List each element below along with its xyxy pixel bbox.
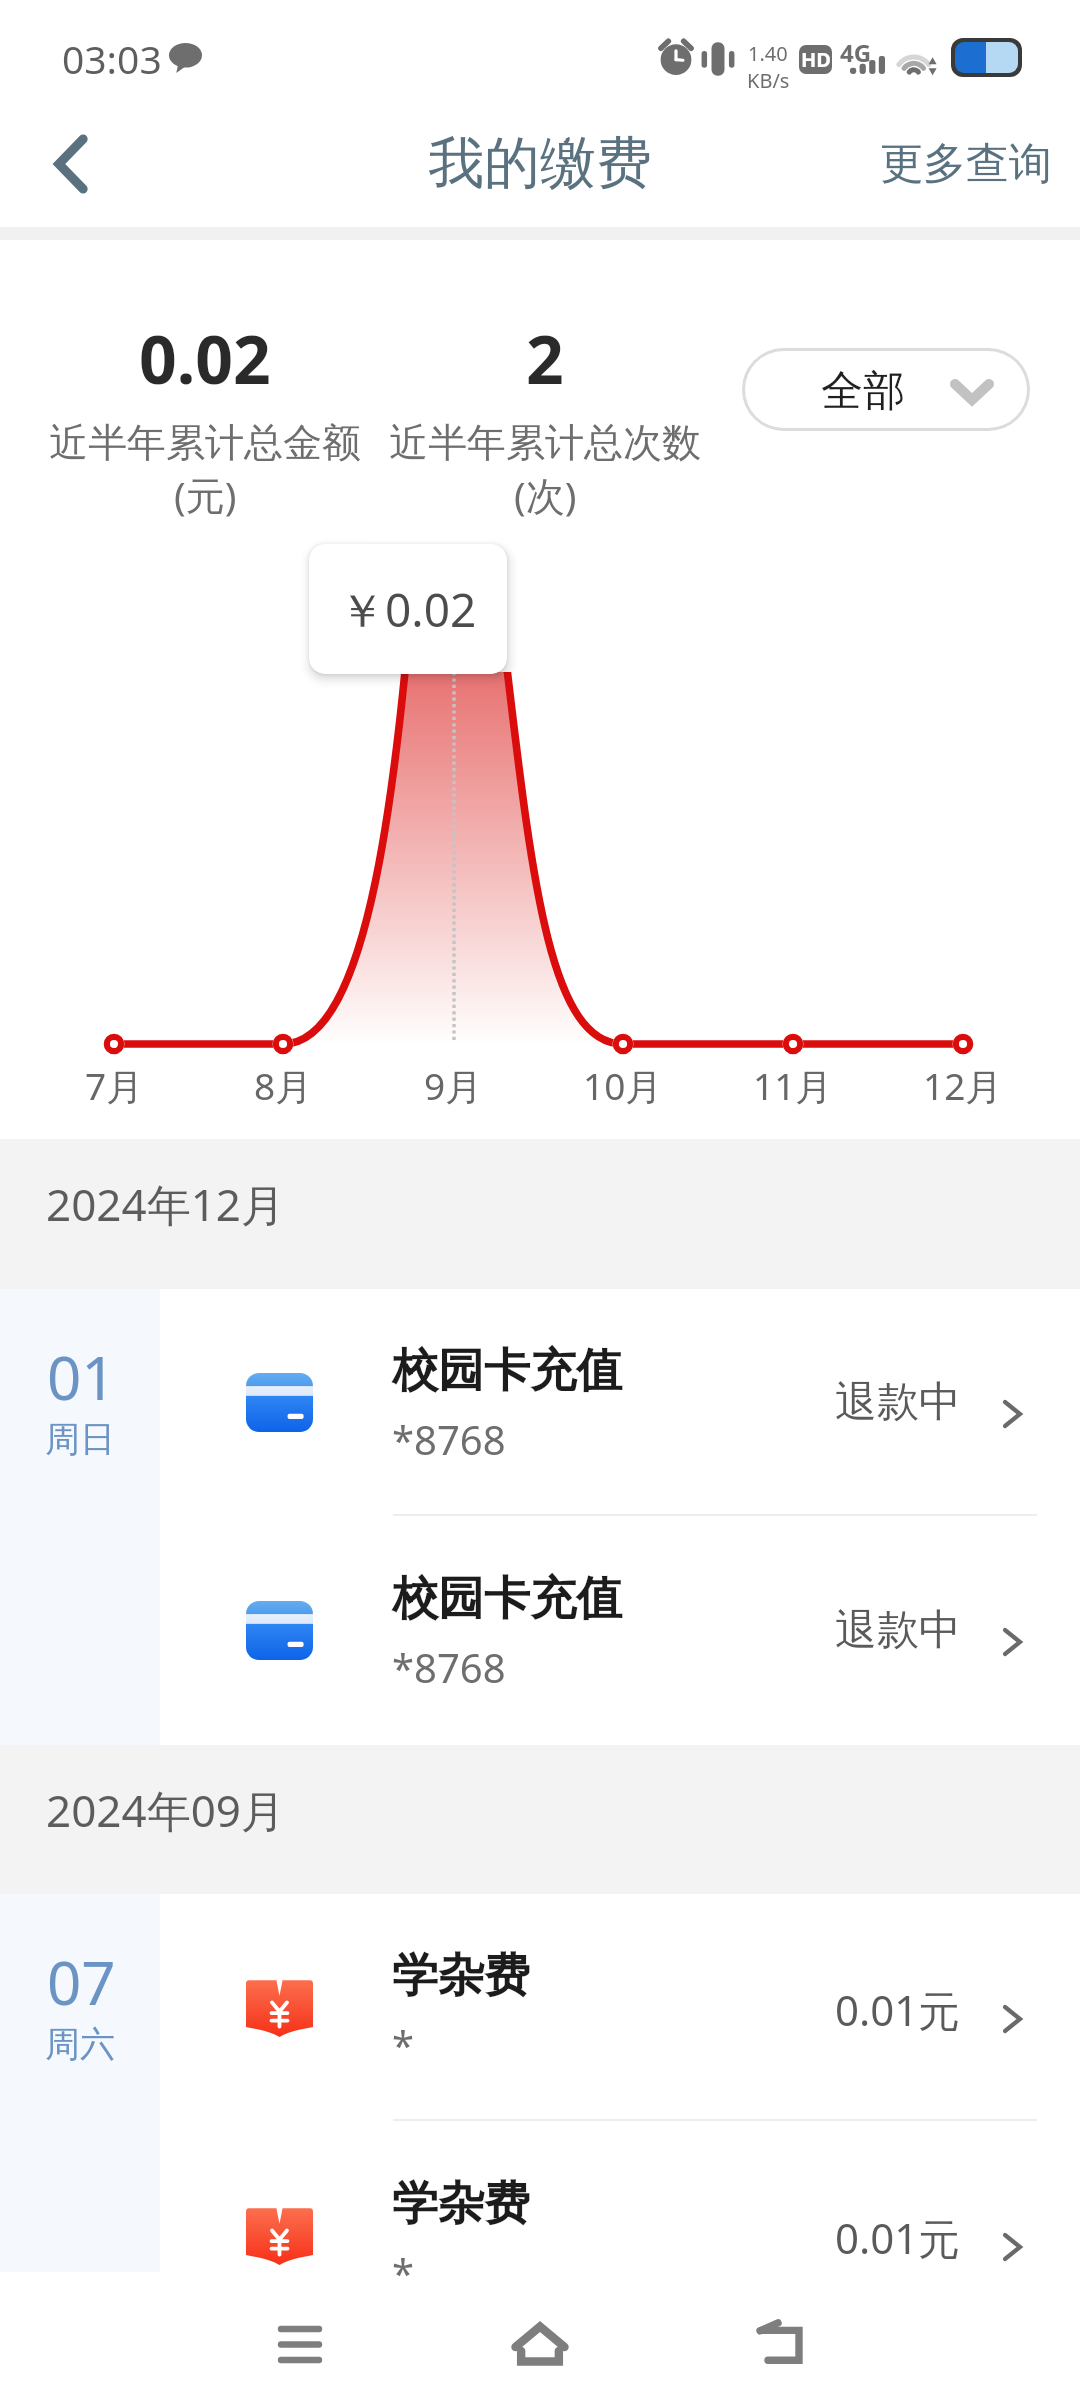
staticText: 11月 [753,1060,833,1111]
staticText: 2 [526,313,564,403]
button[interactable]: 学杂费 [0,1894,1080,2122]
staticText: 退款中 [835,1604,961,1657]
staticText: KB/s [747,67,790,94]
staticText: 0.02 [139,313,271,403]
staticText: 8月 [254,1060,313,1111]
staticText: 0.01元 [835,1981,961,2038]
staticText: 03:03 [62,32,162,85]
staticText: 全部 [821,365,905,418]
staticText: 学杂费 [392,1947,530,2005]
staticText: (元) [174,468,237,521]
staticText: 周六 [45,2022,115,2066]
staticText: 近半年累计总次数 [389,418,701,467]
button[interactable]: 全部 [745,351,1027,428]
staticText: 退款中 [835,1376,961,1429]
staticText: * [392,2017,415,2071]
staticText: 校园卡充值 [392,1570,622,1628]
staticText: * [392,2245,415,2299]
staticText: 2024年09月 [46,1780,286,1840]
button[interactable]: 校园卡充值 [0,1289,1080,1517]
button[interactable]: Back [28,121,114,207]
staticText: 9月 [424,1060,483,1111]
staticText: 校园卡充值 [392,1342,622,1400]
staticText: 7月 [85,1060,144,1111]
staticText: 12月 [923,1060,1003,1111]
staticText: 周日 [45,1417,115,1461]
button[interactable]: 校园卡充值 [0,1517,1080,1745]
staticText: 我的缴费 [428,128,652,199]
staticText: 01 [47,1336,116,1418]
button[interactable]: 更多查询 [868,127,1080,201]
button[interactable]: 学杂费 [0,2122,1080,2350]
staticText: 10月 [583,1060,663,1111]
staticText: *8768 [392,1412,506,1466]
staticText: 0.01元 [835,2209,961,2266]
staticText: *8768 [392,1640,506,1694]
staticText: 2024年12月 [46,1174,286,1234]
button[interactable]: Recent apps [240,2288,360,2400]
staticText: 07 [47,1941,116,2023]
staticText: 学杂费 [392,2175,530,2233]
staticText: ￥0.02 [339,578,477,641]
staticText: 更多查询 [880,137,1052,191]
button[interactable]: Home [480,2288,600,2400]
staticText: 4G [840,36,872,69]
staticText: 近半年累计总金额 [49,418,361,467]
staticText: HD [801,46,831,73]
staticText: 1.40 [748,40,788,67]
staticText: (次) [514,468,577,521]
button[interactable]: Back [720,2288,840,2400]
